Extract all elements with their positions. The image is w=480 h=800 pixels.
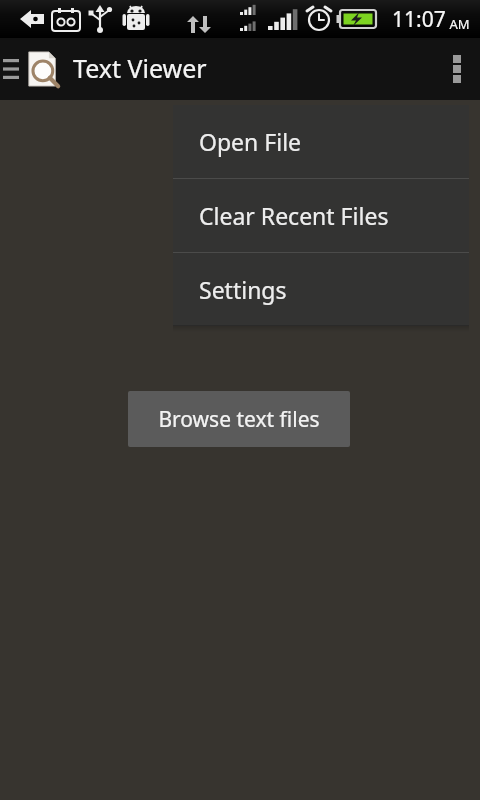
button[interactable]: Navigation drawer [0, 49, 22, 89]
button[interactable]: More options [434, 38, 480, 100]
button[interactable]: Open File [173, 105, 469, 178]
staticText: Browse text files [158, 405, 320, 434]
staticText: AM [446, 15, 470, 33]
button[interactable]: Browse text files [128, 391, 350, 447]
staticText: Clear Recent Files [199, 200, 389, 231]
staticText: Open File [199, 126, 302, 157]
button[interactable]: Clear Recent Files [173, 179, 469, 252]
staticText: 11:07 [392, 5, 446, 34]
button[interactable]: Settings [173, 253, 469, 326]
staticText: Settings [199, 274, 287, 305]
staticText: Text Viewer [73, 51, 207, 85]
